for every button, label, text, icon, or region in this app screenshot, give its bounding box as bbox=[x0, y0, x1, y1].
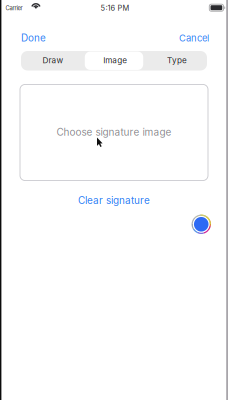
staticText: Done bbox=[21, 32, 46, 44]
staticText: Choose signature image bbox=[56, 126, 171, 138]
staticText: Image bbox=[103, 55, 127, 65]
staticText: Clear signature bbox=[78, 194, 150, 206]
staticText: Cancel bbox=[179, 32, 209, 44]
staticText: Type bbox=[167, 55, 187, 65]
button[interactable]: Done bbox=[21, 17, 51, 51]
button[interactable]: Signature colour bbox=[191, 214, 211, 234]
staticText: 5:16 PM bbox=[100, 4, 129, 13]
button[interactable]: Image bbox=[83, 51, 144, 70]
button[interactable]: Draw bbox=[22, 51, 83, 70]
button[interactable]: Cancel bbox=[175, 17, 209, 51]
button[interactable]: Choose signature image bbox=[20, 84, 208, 180]
button[interactable]: Clear signature bbox=[72, 191, 156, 209]
button[interactable]: Type bbox=[144, 51, 205, 70]
staticText: Draw bbox=[42, 55, 63, 65]
staticText: Carrier bbox=[5, 5, 22, 12]
